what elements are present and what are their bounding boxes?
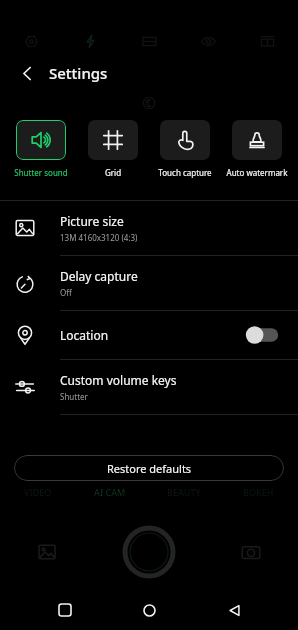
button[interactable]: Camera settings (16, 26, 46, 56)
button[interactable]: Back (12, 58, 42, 88)
button[interactable]: Custom volume keys (0, 360, 298, 414)
button[interactable]: HDR (134, 26, 164, 56)
staticText: 13M 4160x3120 (4:3) (60, 232, 138, 243)
button[interactable]: Delay capture (0, 256, 298, 310)
staticText: Location (60, 327, 109, 343)
staticText: Grid (82, 167, 144, 178)
staticText: Touch capture (154, 167, 216, 178)
button[interactable]: Aspect ratio (252, 26, 282, 56)
button[interactable]: Recents (45, 590, 85, 630)
staticText: Picture size (60, 213, 124, 229)
staticText: Restore defaults (107, 461, 192, 476)
button[interactable]: Beauty (193, 26, 223, 56)
staticText: Custom volume keys (60, 372, 177, 388)
button[interactable]: Auto watermark (226, 120, 288, 178)
button[interactable]: Grid (82, 120, 144, 178)
staticText: Delay capture (60, 268, 138, 284)
staticText: Settings (49, 63, 108, 83)
button[interactable]: Picture size (0, 201, 298, 255)
button[interactable]: Restore defaults (14, 455, 284, 481)
button[interactable]: Night mode (137, 91, 161, 115)
staticText: Shutter (60, 391, 88, 402)
button[interactable]: Home (129, 590, 169, 630)
button[interactable]: Shutter (123, 526, 175, 578)
button[interactable]: BOKEH (243, 486, 274, 498)
button[interactable]: AI CAM (94, 486, 126, 498)
button[interactable]: Location toggle (244, 324, 282, 346)
staticText: Auto watermark (226, 167, 288, 178)
button[interactable]: BEAUTY (167, 486, 201, 498)
staticText: Shutter sound (10, 167, 72, 178)
button[interactable]: Gallery (30, 535, 64, 569)
button[interactable]: Shutter sound (10, 120, 72, 178)
button[interactable]: Flash (75, 26, 105, 56)
staticText: Off (60, 287, 72, 298)
button[interactable]: Back (214, 590, 254, 630)
button[interactable]: Touch capture (154, 120, 216, 178)
button[interactable]: Location (0, 311, 298, 359)
button[interactable]: Switch camera (234, 535, 268, 569)
button[interactable]: VIDEO (24, 486, 52, 498)
